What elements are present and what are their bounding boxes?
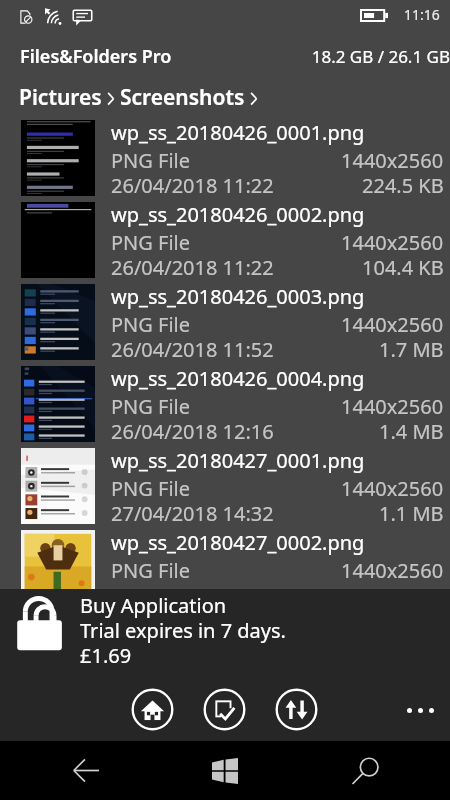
button[interactable]: Back [56, 741, 116, 800]
button[interactable]: wp_ss_20180426_0001.png [0, 120, 450, 202]
staticText: wp_ss_20180426_0004.png [111, 365, 365, 392]
staticText: PNG File [111, 557, 191, 584]
button[interactable]: wp_ss_20180426_0004.png [0, 366, 450, 448]
staticText: Buy Application [80, 592, 227, 619]
staticText: wp_ss_20180426_0003.png [111, 283, 365, 310]
staticText: 1440x2560 [341, 311, 444, 338]
staticText: wp_ss_20180427_0001.png [111, 447, 365, 474]
staticText: wp_ss_20180426_0002.png [111, 201, 365, 228]
button[interactable]: wp_ss_20180426_0003.png [0, 284, 450, 366]
button[interactable]: Pictures [19, 83, 102, 112]
staticText: PNG File [111, 147, 191, 174]
staticText: 1440x2560 [341, 393, 444, 420]
staticText: PNG File [111, 393, 191, 420]
staticText: wp_ss_20180427_0002.png [111, 529, 365, 556]
button[interactable]: wp_ss_20180427_0002.png [0, 530, 450, 589]
button[interactable]: Home [131, 688, 174, 731]
staticText: 1.1 MB [379, 500, 444, 527]
staticText: 1.4 MB [379, 418, 444, 445]
staticText: 1.7 MB [379, 336, 444, 363]
staticText: PNG File [111, 229, 191, 256]
staticText: wp_ss_20180426_0001.png [111, 119, 365, 146]
staticText: 104.4 KB [362, 254, 444, 281]
button[interactable]: Select [203, 688, 246, 731]
staticText: 26/04/2018 11:22 [111, 172, 274, 199]
staticText: £1.69 [80, 642, 132, 669]
button[interactable]: Screenshots [120, 83, 245, 112]
button[interactable]: Sort [275, 688, 318, 731]
button[interactable]: Search [335, 741, 395, 800]
staticText: 26/04/2018 12:16 [111, 418, 274, 445]
staticText: 11:16 [404, 5, 440, 24]
staticText: 26/04/2018 11:52 [111, 336, 274, 363]
staticText: Trial expires in 7 days. [80, 617, 286, 644]
staticText: 1440x2560 [341, 229, 444, 256]
staticText: Files&Folders Pro [20, 44, 172, 69]
button[interactable]: Start [195, 741, 255, 800]
button[interactable]: wp_ss_20180426_0002.png [0, 202, 450, 284]
button[interactable]: Buy Application [0, 589, 450, 671]
staticText: 27/04/2018 14:32 [111, 500, 274, 527]
staticText: PNG File [111, 311, 191, 338]
staticText: 1440x2560 [341, 475, 444, 502]
button[interactable]: More options [398, 688, 442, 732]
button[interactable]: wp_ss_20180427_0001.png [0, 448, 450, 530]
staticText: 224.5 KB [362, 172, 444, 199]
staticText: 18.2 GB / 26.1 GB [0, 45, 450, 68]
staticText: PNG File [111, 475, 191, 502]
staticText: 1440x2560 [341, 147, 444, 174]
staticText: 1440x2560 [341, 557, 444, 584]
staticText: 26/04/2018 11:22 [111, 254, 274, 281]
